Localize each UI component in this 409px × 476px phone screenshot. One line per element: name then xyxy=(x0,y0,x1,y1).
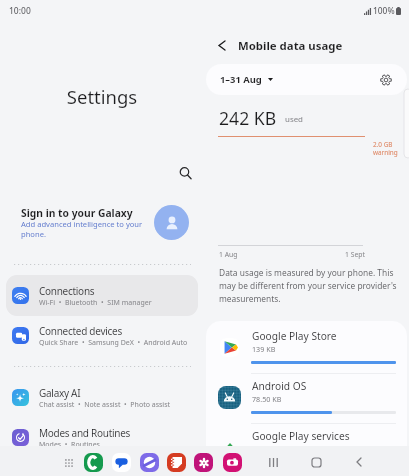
staticText: Quick Share • Samsung DeX • Android Auto xyxy=(39,338,188,348)
button[interactable]: Search xyxy=(171,159,199,187)
button[interactable]: App shortcut xyxy=(167,453,186,472)
staticText: Modes • Routines xyxy=(39,440,100,450)
button[interactable]: Home xyxy=(306,452,326,472)
button[interactable]: Android OS xyxy=(206,371,407,421)
staticText: 100% xyxy=(373,5,395,16)
staticText: Wi-Fi • Bluetooth • SIM manager xyxy=(39,298,152,308)
button[interactable]: App shortcut xyxy=(194,453,213,472)
staticText: Connections xyxy=(39,284,95,298)
staticText: Connected devices xyxy=(39,324,122,338)
staticText: 242 KB xyxy=(219,106,277,130)
staticText: 1–31 Aug xyxy=(220,73,262,86)
staticText: 2.0 GB warning xyxy=(373,140,398,157)
staticText: Sign in to your Galaxy xyxy=(21,206,133,220)
staticText: Settings xyxy=(0,84,204,109)
staticText: Modes and Routines xyxy=(39,426,131,440)
staticText: used xyxy=(285,114,303,125)
button[interactable]: App shortcut xyxy=(140,453,159,472)
button[interactable]: Connected devices xyxy=(6,315,198,356)
staticText: 1 Sept xyxy=(345,250,365,259)
button[interactable]: Apps xyxy=(59,453,79,473)
button[interactable]: App shortcut xyxy=(84,453,103,472)
staticText: Google Play services xyxy=(252,429,350,443)
button[interactable]: 1–31 Aug xyxy=(206,64,407,95)
button[interactable]: Recents xyxy=(263,452,283,472)
button[interactable]: App shortcut xyxy=(223,453,242,472)
button[interactable]: Back xyxy=(349,452,369,472)
button[interactable]: Connections xyxy=(6,275,198,316)
staticText: Add advanced intelligence to your phone. xyxy=(21,219,143,240)
button[interactable]: Google Play services xyxy=(206,421,407,471)
staticText: Mobile data usage xyxy=(238,38,343,54)
staticText: 139 KB xyxy=(252,344,276,354)
staticText: Android OS xyxy=(252,379,307,393)
staticText: 24.74 KB xyxy=(252,444,282,454)
button[interactable]: Google Play Store xyxy=(206,321,407,371)
staticText: Galaxy AI xyxy=(39,386,81,400)
staticText: 78.50 KB xyxy=(252,394,282,404)
staticText: Data usage is measured by your phone. Th… xyxy=(219,267,399,304)
staticText: 10:00 xyxy=(9,5,31,17)
button[interactable]: Modes and Routines xyxy=(6,417,198,458)
staticText: Google Play Store xyxy=(252,329,337,343)
staticText: 1 Aug xyxy=(219,250,238,259)
button[interactable]: Data usage settings xyxy=(375,69,397,91)
button[interactable] xyxy=(6,198,198,246)
staticText: Chat assist • Note assist • Photo assist xyxy=(39,400,171,410)
button[interactable]: Account xyxy=(154,205,189,240)
button[interactable]: Galaxy AI xyxy=(6,377,198,418)
button[interactable]: Back xyxy=(209,32,235,58)
button[interactable]: App shortcut xyxy=(112,453,131,472)
